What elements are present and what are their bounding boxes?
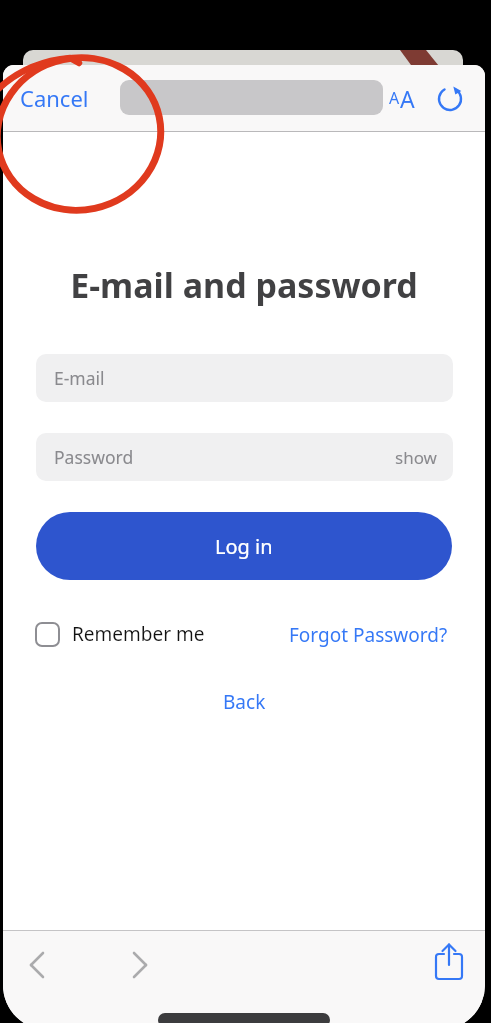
staticText: Forgot Password? — [289, 622, 448, 648]
button[interactable]: E-mail — [36, 354, 453, 402]
staticText: A — [389, 87, 400, 109]
staticText: Password — [54, 445, 134, 469]
button[interactable]: Back — [223, 689, 266, 715]
staticText: Remember me — [72, 621, 205, 647]
button[interactable]: Log in — [36, 512, 452, 580]
button[interactable] — [124, 949, 156, 981]
staticText: E-mail and password — [3, 262, 485, 308]
button[interactable] — [435, 83, 465, 113]
staticText: E-mail — [54, 366, 105, 390]
button[interactable]: Remember me — [35, 621, 205, 647]
button[interactable]: Password — [36, 433, 453, 481]
staticText: A — [400, 83, 415, 114]
button[interactable] — [21, 949, 53, 981]
button[interactable]: Forgot Password? — [289, 622, 448, 648]
button[interactable] — [120, 80, 383, 115]
button[interactable]: Cancel — [20, 83, 89, 113]
staticText: Log in — [215, 533, 273, 560]
staticText: Back — [223, 689, 266, 715]
button[interactable] — [431, 943, 467, 979]
button[interactable]: A — [389, 65, 415, 131]
staticText: Cancel — [20, 83, 89, 113]
staticText: show — [395, 446, 437, 469]
